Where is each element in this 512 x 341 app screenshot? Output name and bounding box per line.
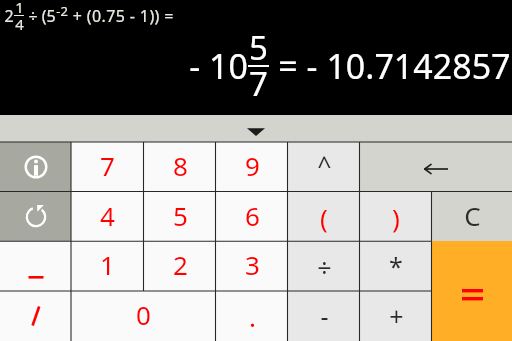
- button[interactable]: 4: [71, 192, 144, 242]
- staticText: 7: [100, 148, 115, 183]
- button[interactable]: Info: [0, 142, 71, 192]
- button[interactable]: 0: [71, 291, 216, 341]
- staticText: (: [320, 200, 328, 235]
- staticText: C: [464, 198, 481, 233]
- staticText: 4: [15, 14, 24, 34]
- staticText: 5: [249, 25, 268, 70]
- staticText: 7: [249, 61, 268, 106]
- staticText: -2: [56, 2, 68, 20]
- staticText: +: [389, 299, 404, 333]
- staticText: ÷ (5: [24, 5, 56, 27]
- staticText: *: [389, 249, 403, 283]
- staticText: 6: [245, 198, 260, 233]
- staticText: ÷: [317, 250, 332, 284]
- button[interactable]: ^: [288, 142, 360, 192]
- button[interactable]: .: [216, 291, 288, 341]
- staticText: ^: [317, 148, 332, 182]
- staticText: 2: [173, 247, 188, 282]
- staticText: 1: [15, 0, 24, 17]
- button[interactable]: Show history: [0, 115, 512, 142]
- staticText: 0: [136, 297, 151, 332]
- staticText: .: [249, 299, 256, 334]
- staticText: 2: [4, 5, 14, 27]
- button[interactable]: ): [360, 192, 432, 242]
- staticText: 4: [100, 198, 115, 233]
- button[interactable]: 7: [71, 142, 144, 192]
- staticText: 1: [100, 247, 115, 282]
- button[interactable]: 9: [216, 142, 288, 192]
- staticText: ): [392, 200, 400, 235]
- button[interactable]: +: [360, 291, 432, 341]
- button[interactable]: -: [288, 291, 360, 341]
- button[interactable]: C: [432, 192, 512, 242]
- button[interactable]: Undo: [0, 192, 71, 242]
- staticText: + (0.75 - 1)) =: [68, 5, 174, 27]
- button[interactable]: 6: [216, 192, 288, 242]
- button[interactable]: ÷: [288, 241, 360, 291]
- button[interactable]: 1: [71, 241, 144, 291]
- button[interactable]: *: [360, 241, 432, 291]
- button[interactable]: 2: [144, 241, 216, 291]
- staticText: - 10: [189, 43, 248, 89]
- button[interactable]: 3: [216, 241, 288, 291]
- staticText: -: [320, 299, 329, 333]
- button[interactable]: Equals: [432, 241, 512, 341]
- button[interactable]: 5: [144, 192, 216, 242]
- staticText: 3: [245, 247, 260, 282]
- button[interactable]: (: [288, 192, 360, 242]
- button[interactable]: Fraction: [0, 291, 71, 341]
- staticText: 5: [173, 198, 188, 233]
- button[interactable]: Backspace: [360, 142, 512, 192]
- button[interactable]: Whole part: [0, 241, 71, 291]
- button[interactable]: 8: [144, 142, 216, 192]
- staticText: = - 10.7142857: [269, 43, 511, 89]
- staticText: 8: [173, 148, 188, 183]
- staticText: 9: [245, 148, 260, 183]
